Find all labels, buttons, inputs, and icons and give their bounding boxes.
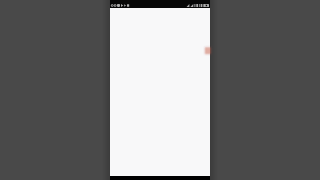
button[interactable]: Status bar [110,0,210,8]
button[interactable]: Action [200,44,212,56]
